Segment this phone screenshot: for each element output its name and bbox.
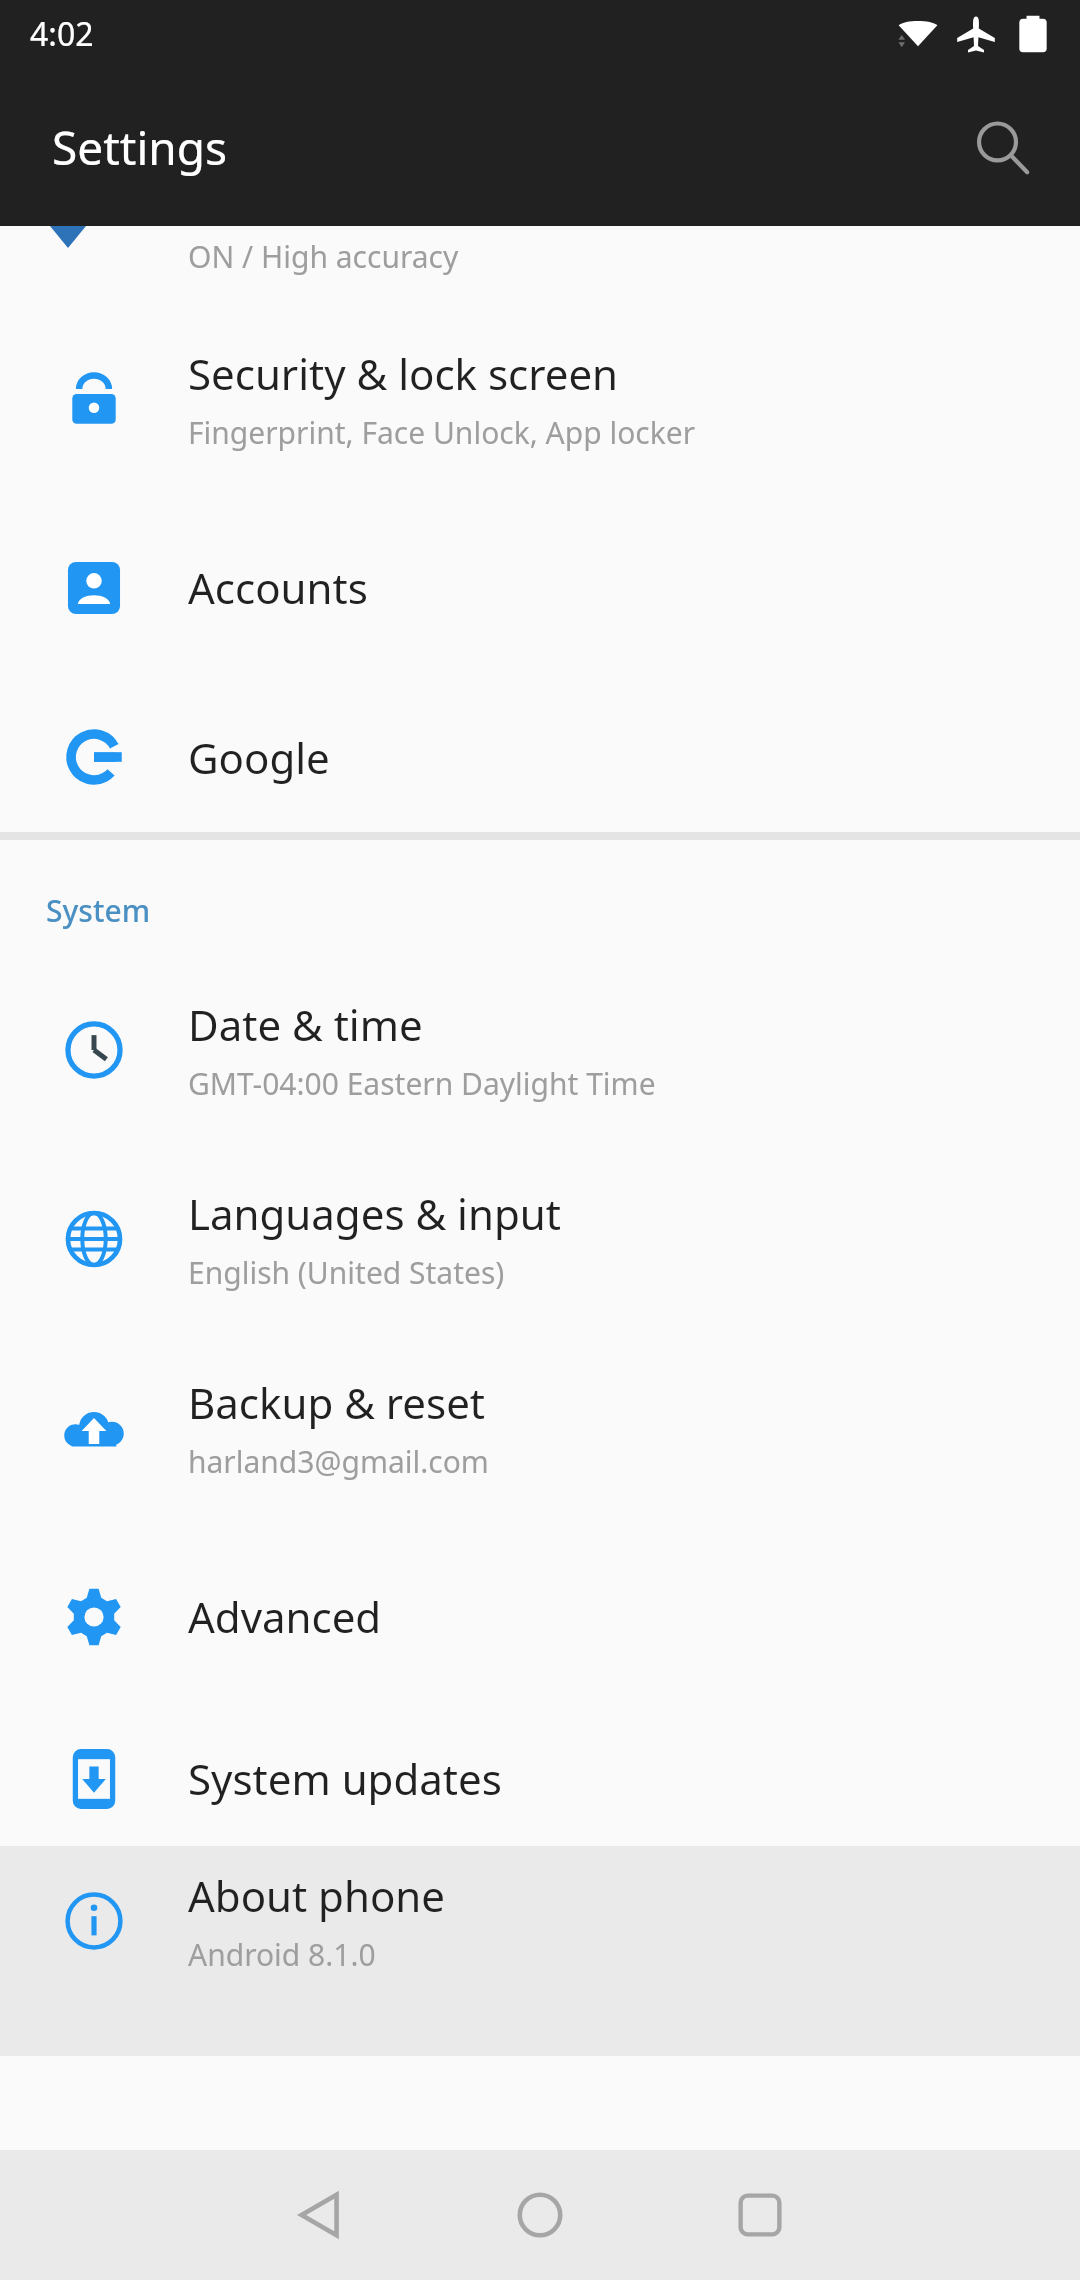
staticText: ON / High accuracy: [188, 236, 459, 277]
staticText: Accounts: [188, 559, 368, 616]
staticText: Backup & reset: [188, 1374, 485, 1431]
button[interactable]: Search: [954, 99, 1050, 195]
button[interactable]: Languages & input: [0, 1144, 1080, 1333]
staticText: System updates: [188, 1750, 502, 1807]
staticText: Settings: [52, 116, 228, 179]
staticText: Google: [188, 729, 330, 786]
staticText: Security & lock screen: [188, 345, 619, 402]
staticText: Date & time: [188, 996, 423, 1053]
button[interactable]: Recent apps: [690, 2150, 830, 2280]
staticText: About phone: [188, 1867, 445, 1924]
staticText: 4:02: [30, 12, 94, 56]
staticText: Advanced: [188, 1588, 382, 1645]
button[interactable]: Security & lock screen: [0, 304, 1080, 493]
button[interactable]: Backup & reset: [0, 1333, 1080, 1522]
button[interactable]: About phone: [0, 1846, 1080, 1996]
staticText: GMT-04:00 Eastern Daylight Time: [188, 1063, 656, 1104]
button[interactable]: System updates: [0, 1711, 1080, 1846]
staticText: Fingerprint, Face Unlock, App locker: [188, 412, 696, 453]
button[interactable]: Home: [470, 2150, 610, 2280]
button[interactable]: Advanced: [0, 1522, 1080, 1711]
staticText: Languages & input: [188, 1185, 561, 1242]
button[interactable]: Accounts: [0, 493, 1080, 682]
staticText: harland3@gmail.com: [188, 1441, 489, 1482]
button[interactable]: Date & time: [0, 955, 1080, 1144]
button[interactable]: Back: [250, 2150, 390, 2280]
button[interactable]: Google: [0, 682, 1080, 832]
staticText: English (United States): [188, 1252, 505, 1293]
staticText: Android 8.1.0: [188, 1934, 376, 1975]
staticText: System: [46, 890, 151, 931]
